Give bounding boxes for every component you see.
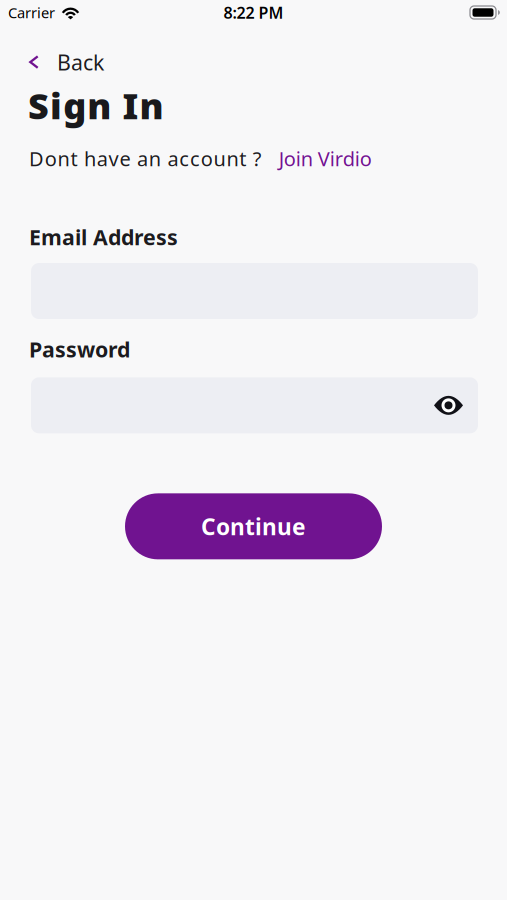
button[interactable]: Continue (125, 493, 382, 559)
button[interactable]: Show password (434, 394, 478, 417)
staticText: Password (29, 335, 130, 363)
staticText: Back (57, 48, 104, 76)
staticText: Email Address (29, 223, 178, 251)
staticText: Continue (201, 511, 306, 541)
button[interactable]: Email Address (0, 263, 507, 319)
button[interactable]: Back (0, 48, 104, 76)
staticText: Join Virdio (279, 145, 372, 172)
staticText: Sign In (28, 81, 164, 129)
staticText: Dont have an account ? (29, 145, 262, 172)
staticText: 8:22 PM (223, 2, 283, 23)
button[interactable]: Join Virdio (279, 145, 372, 172)
button[interactable]: Password (0, 377, 507, 433)
staticText: Carrier (8, 3, 55, 22)
